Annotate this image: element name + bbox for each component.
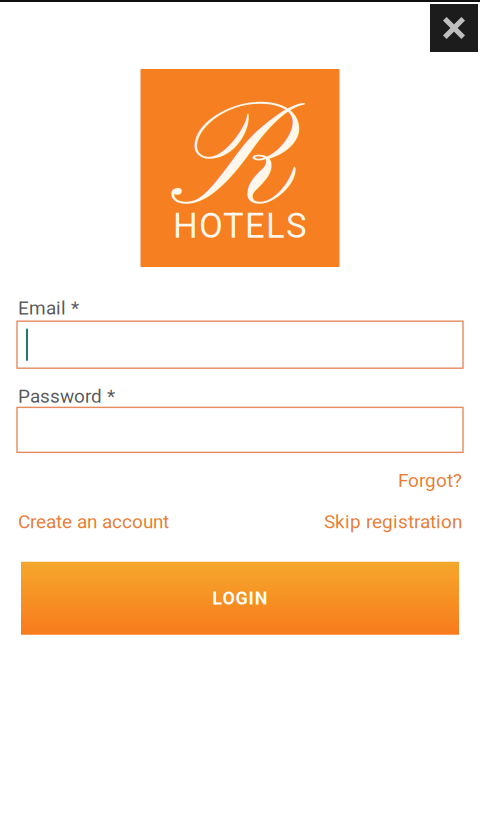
staticText: Skip registration xyxy=(324,511,462,533)
staticText: HOTELS xyxy=(173,206,307,246)
staticText: R xyxy=(168,75,296,261)
staticText: Create an account xyxy=(18,511,169,533)
staticText: Email * xyxy=(18,297,79,319)
staticText: Forgot? xyxy=(398,469,462,492)
button[interactable]: Skip registration xyxy=(324,511,462,533)
button[interactable]: Forgot? xyxy=(398,469,462,492)
button[interactable]: Create an account xyxy=(18,511,169,533)
button[interactable]: LOGIN xyxy=(21,562,459,635)
staticText: Password * xyxy=(18,385,115,407)
staticText: LOGIN xyxy=(212,588,268,609)
button[interactable]: Close xyxy=(430,4,478,52)
